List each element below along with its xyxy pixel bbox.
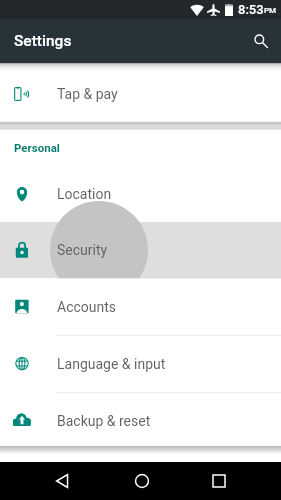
button[interactable]: Tap & pay [0, 63, 281, 121]
staticText: Settings [14, 32, 72, 50]
staticText: Backup & reset [57, 413, 151, 429]
staticText: Accounts [57, 299, 117, 315]
button[interactable]: Location [0, 165, 281, 222]
button[interactable]: Security [0, 222, 281, 278]
staticText: Language & input [57, 356, 166, 372]
button[interactable]: Backup & reset [0, 392, 281, 449]
button[interactable]: Accounts [0, 278, 281, 335]
staticText: Security [57, 242, 108, 258]
button[interactable]: Search [243, 23, 279, 59]
button[interactable]: Home [118, 462, 166, 500]
staticText: 8:53 [238, 2, 264, 17]
button[interactable]: Recent apps [195, 462, 243, 500]
staticText: Personal [14, 141, 60, 154]
staticText: Location [57, 186, 112, 202]
button[interactable]: Back [38, 462, 86, 500]
staticText: Tap & pay [57, 86, 118, 102]
button[interactable]: Language & input [0, 335, 281, 392]
staticText: PM [264, 6, 277, 15]
